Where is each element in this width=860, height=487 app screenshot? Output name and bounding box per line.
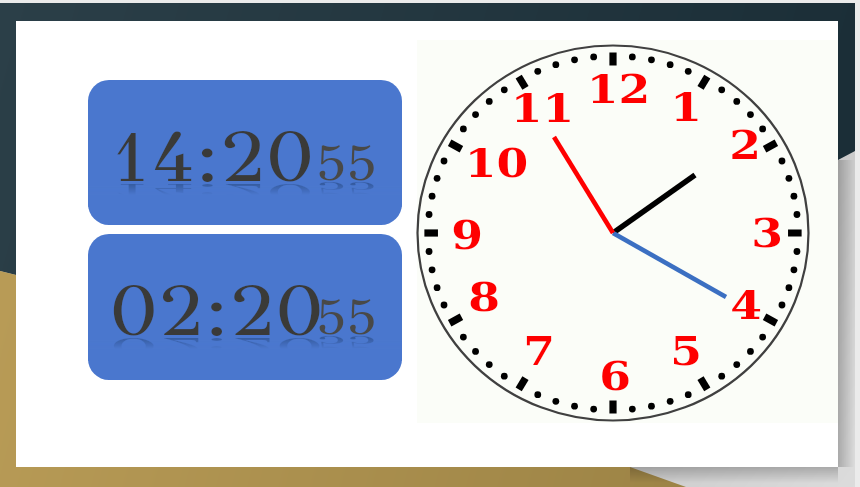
- staticText: 14:20: [110, 177, 314, 205]
- staticText: 55: [316, 133, 377, 194]
- staticText: 8: [468, 274, 500, 320]
- button[interactable]: 02:20: [88, 234, 402, 380]
- staticText: 3: [751, 210, 783, 256]
- staticText: 55: [316, 178, 377, 198]
- staticText: 9: [451, 212, 483, 258]
- staticText: 11: [510, 85, 575, 131]
- staticText: 2: [729, 122, 761, 168]
- staticText: 5: [670, 328, 702, 374]
- button[interactable]: 14:20: [88, 80, 402, 225]
- staticText: 1: [670, 84, 702, 130]
- staticText: 6: [599, 353, 631, 399]
- staticText: 7: [523, 328, 555, 374]
- staticText: 02:20: [110, 331, 323, 359]
- staticText: 02:20: [110, 269, 323, 354]
- staticText: 12: [586, 66, 651, 112]
- staticText: 55: [316, 287, 377, 348]
- staticText: 10: [464, 140, 529, 186]
- staticText: 14:20: [110, 115, 314, 200]
- staticText: 55: [316, 332, 377, 352]
- staticText: 4: [730, 282, 762, 328]
